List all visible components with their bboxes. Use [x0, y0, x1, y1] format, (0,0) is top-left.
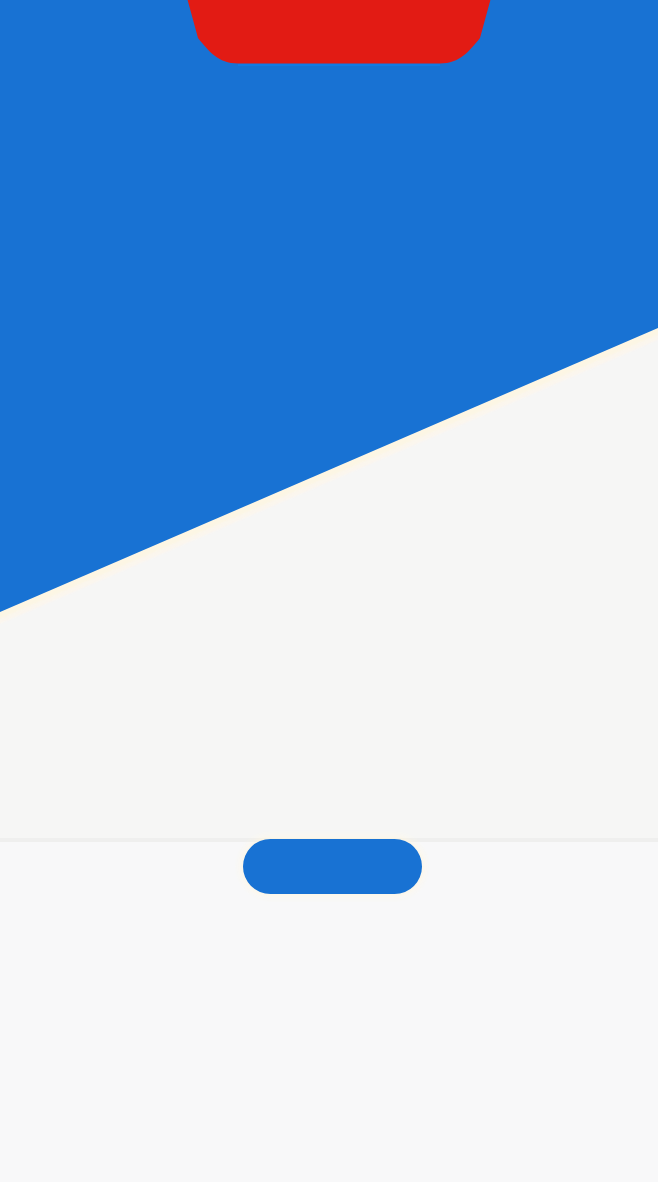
button[interactable]: Continue — [243, 839, 422, 894]
